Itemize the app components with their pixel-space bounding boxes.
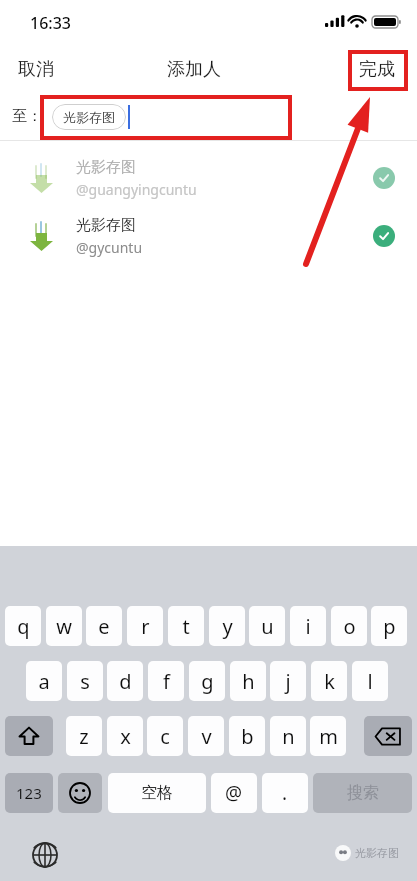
button[interactable]: z bbox=[66, 716, 102, 756]
staticText: s bbox=[80, 668, 90, 695]
staticText: v bbox=[201, 723, 212, 750]
button[interactable]: y bbox=[209, 606, 245, 646]
staticText: 123 bbox=[16, 783, 42, 803]
staticText: 光影存图 bbox=[76, 158, 136, 177]
button[interactable]: k bbox=[311, 661, 347, 701]
staticText: h bbox=[242, 668, 255, 695]
button[interactable]: 光影存图 bbox=[0, 150, 417, 206]
staticText: f bbox=[163, 668, 170, 695]
button[interactable]: o bbox=[331, 606, 367, 646]
button[interactable]: e bbox=[86, 606, 122, 646]
staticText: r bbox=[141, 613, 150, 640]
button[interactable]: l bbox=[352, 661, 388, 701]
button[interactable]: f bbox=[148, 661, 184, 701]
button[interactable]: . bbox=[262, 773, 308, 813]
staticText: 16:33 bbox=[30, 12, 71, 34]
button[interactable]: j bbox=[270, 661, 306, 701]
staticText: 光影存图 bbox=[63, 109, 115, 125]
staticText: 至： bbox=[12, 107, 42, 126]
staticText: b bbox=[241, 723, 254, 750]
button[interactable]: w bbox=[46, 606, 82, 646]
staticText: 光影存图 bbox=[355, 846, 399, 860]
staticText: g bbox=[201, 668, 214, 695]
button[interactable]: 完成 bbox=[359, 58, 395, 81]
button[interactable]: g bbox=[189, 661, 225, 701]
button[interactable]: u bbox=[249, 606, 285, 646]
button[interactable]: 光影存图 bbox=[0, 208, 417, 264]
staticText: 取消 bbox=[18, 58, 54, 81]
staticText: a bbox=[38, 668, 50, 695]
button[interactable]: Delete bbox=[364, 716, 412, 756]
button[interactable]: @ bbox=[211, 773, 257, 813]
button[interactable]: t bbox=[168, 606, 204, 646]
staticText: m bbox=[319, 723, 338, 750]
staticText: @ bbox=[225, 780, 243, 806]
staticText: e bbox=[98, 613, 110, 640]
staticText: p bbox=[383, 613, 396, 640]
staticText: @guangyingcuntu bbox=[76, 180, 197, 199]
staticText: o bbox=[343, 613, 356, 640]
button[interactable]: s bbox=[67, 661, 103, 701]
button[interactable]: h bbox=[230, 661, 266, 701]
button[interactable]: c bbox=[147, 716, 183, 756]
staticText: c bbox=[160, 723, 170, 750]
staticText: x bbox=[120, 723, 131, 750]
staticText: z bbox=[79, 723, 89, 750]
staticText: t bbox=[182, 613, 190, 640]
button[interactable]: d bbox=[107, 661, 143, 701]
button[interactable]: Emoji bbox=[58, 773, 102, 813]
staticText: q bbox=[17, 613, 30, 640]
button[interactable]: v bbox=[188, 716, 224, 756]
button[interactable]: p bbox=[371, 606, 407, 646]
button[interactable]: n bbox=[270, 716, 306, 756]
button[interactable]: i bbox=[290, 606, 326, 646]
staticText: 光影存图 bbox=[76, 216, 136, 235]
button[interactable]: q bbox=[5, 606, 41, 646]
staticText: 完成 bbox=[359, 58, 395, 81]
staticText: j bbox=[285, 668, 291, 695]
button[interactable]: Shift bbox=[5, 716, 53, 756]
staticText: 搜索 bbox=[347, 783, 379, 803]
button[interactable]: b bbox=[229, 716, 265, 756]
staticText: @gycuntu bbox=[76, 238, 143, 257]
staticText: i bbox=[305, 613, 311, 640]
staticText: 空格 bbox=[141, 783, 173, 803]
staticText: y bbox=[222, 613, 233, 640]
staticText: n bbox=[282, 723, 295, 750]
button[interactable]: 搜索 bbox=[313, 773, 412, 813]
button[interactable]: r bbox=[127, 606, 163, 646]
staticText: d bbox=[119, 668, 132, 695]
staticText: u bbox=[261, 613, 274, 640]
button[interactable]: Change keyboard bbox=[28, 838, 62, 872]
button[interactable]: a bbox=[26, 661, 62, 701]
button[interactable]: x bbox=[107, 716, 143, 756]
button[interactable]: 空格 bbox=[108, 773, 206, 813]
button[interactable]: 光影存图 bbox=[63, 104, 115, 130]
button[interactable]: 取消 bbox=[18, 58, 54, 81]
staticText: w bbox=[56, 613, 72, 640]
button[interactable]: m bbox=[310, 716, 346, 756]
staticText: k bbox=[324, 668, 335, 695]
button[interactable]: 123 bbox=[5, 773, 53, 813]
staticText: . bbox=[282, 780, 288, 806]
staticText: 添加人 bbox=[167, 58, 221, 81]
staticText: l bbox=[367, 668, 373, 695]
